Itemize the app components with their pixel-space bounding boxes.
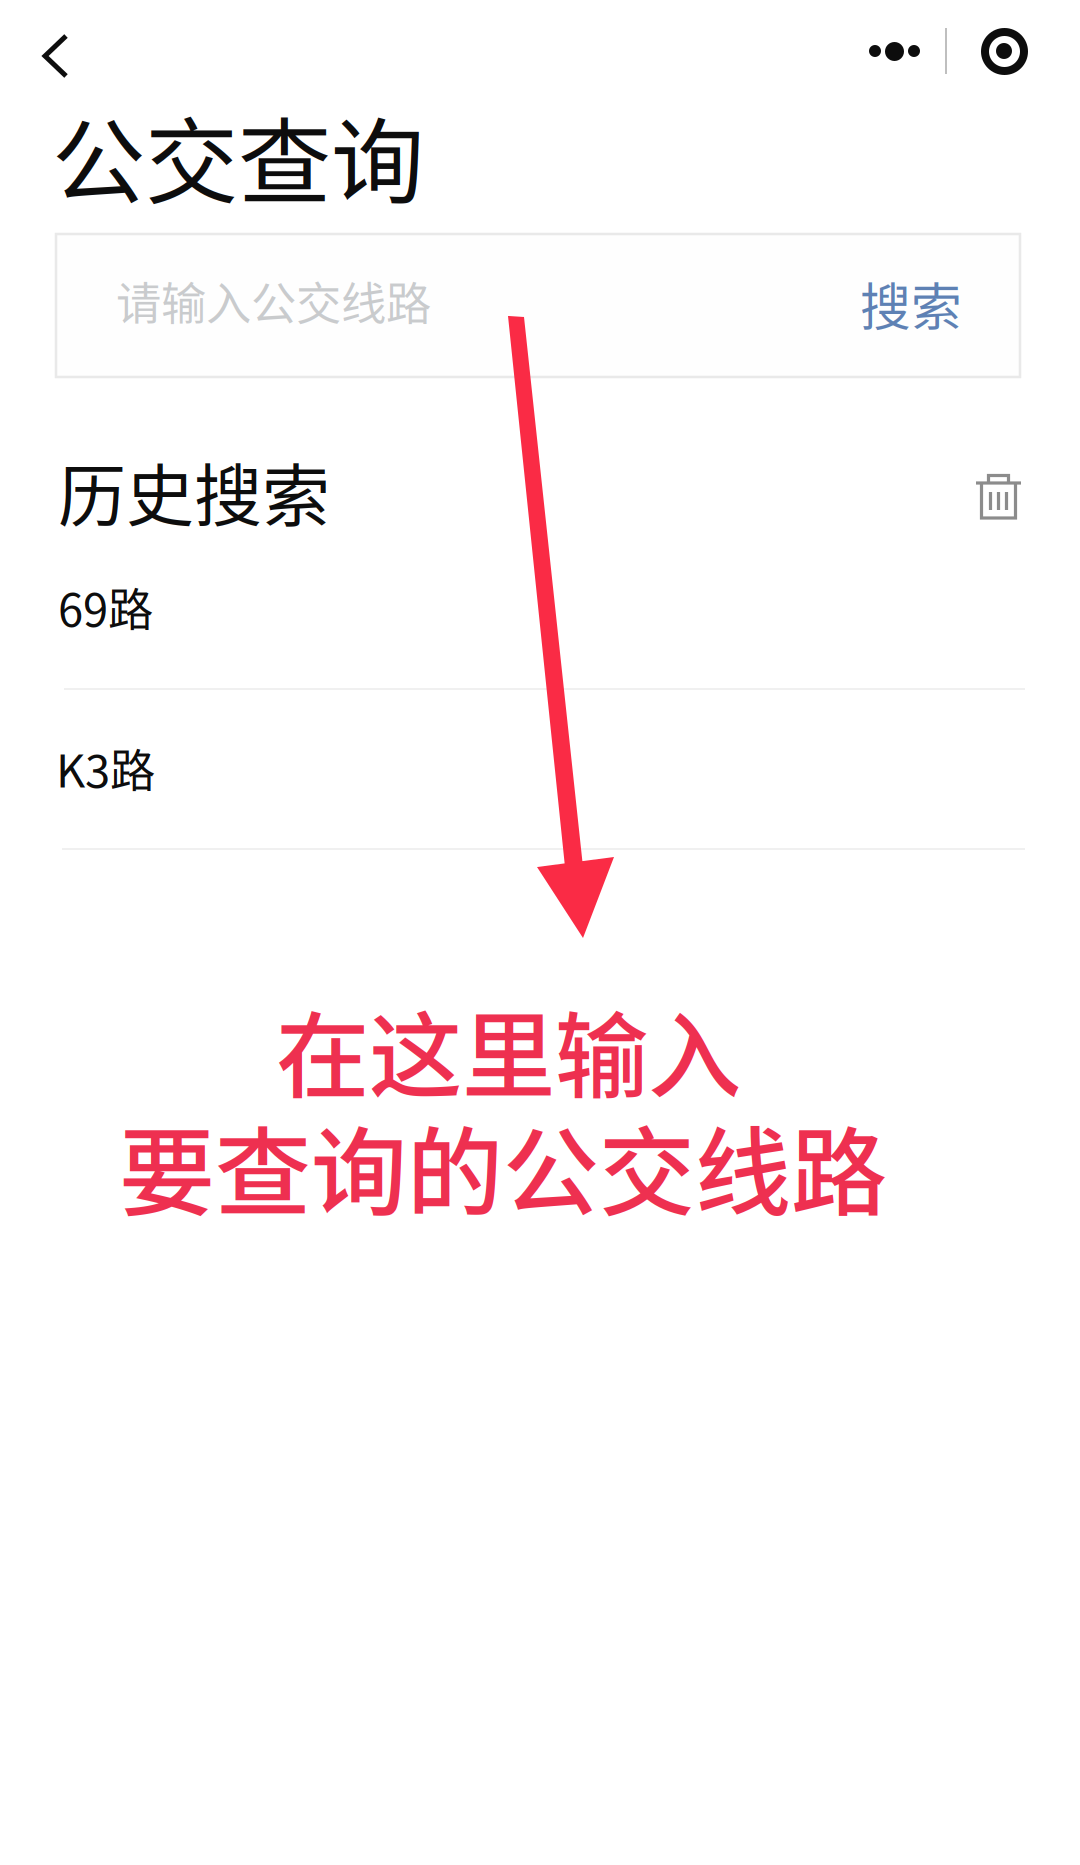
button[interactable]: 69路 bbox=[0, 530, 1080, 690]
button[interactable]: 搜索 bbox=[836, 245, 986, 362]
button[interactable]: 请输入公交线路 bbox=[56, 234, 1020, 377]
staticText: 69路 bbox=[58, 574, 153, 640]
staticText: 要查询的公交线路 bbox=[119, 1096, 887, 1235]
staticText: 请输入公交线路 bbox=[116, 268, 431, 334]
staticText: K3路 bbox=[56, 735, 155, 801]
staticText: 在这里输入 bbox=[276, 982, 741, 1117]
button[interactable]: Clear search history bbox=[958, 454, 1039, 537]
button[interactable]: Back bbox=[16, 9, 95, 103]
button[interactable]: Menu bbox=[869, 0, 1029, 102]
button[interactable]: K3路 bbox=[0, 690, 1080, 850]
staticText: 公交查询 bbox=[52, 88, 424, 223]
staticText: 历史搜索 bbox=[58, 442, 330, 540]
staticText: 搜索 bbox=[860, 267, 962, 340]
